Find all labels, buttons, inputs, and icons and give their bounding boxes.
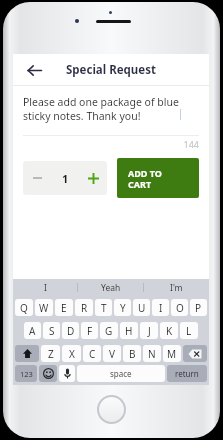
- button[interactable]: U: [133, 299, 150, 316]
- staticText: Q: [20, 301, 28, 315]
- button[interactable]: Increase quantity: [79, 161, 107, 195]
- button[interactable]: R: [75, 299, 93, 316]
- button[interactable]: Decrease quantity: [23, 161, 51, 195]
- button[interactable]: Emoji: [39, 365, 57, 382]
- staticText: Z: [48, 347, 54, 361]
- staticText: Special Request: [66, 62, 156, 78]
- button[interactable]: Y: [114, 299, 131, 316]
- button[interactable]: Z: [41, 345, 60, 362]
- staticText: K: [166, 324, 173, 338]
- button[interactable]: H: [120, 322, 138, 339]
- staticText: I'm: [170, 282, 183, 294]
- button[interactable]: Backspace: [183, 345, 207, 362]
- staticText: B: [129, 347, 136, 361]
- staticText: W: [39, 301, 49, 315]
- button[interactable]: X: [62, 345, 81, 362]
- button[interactable]: space: [77, 365, 165, 382]
- staticText: N: [148, 347, 156, 361]
- staticText: U: [138, 301, 146, 315]
- button[interactable]: I'm: [144, 279, 209, 296]
- staticText: V: [109, 347, 115, 361]
- button[interactable]: M: [163, 345, 181, 362]
- staticText: F: [87, 324, 93, 338]
- button[interactable]: I: [152, 299, 169, 316]
- button[interactable]: O: [171, 299, 188, 316]
- staticText: J: [148, 324, 151, 338]
- staticText: I: [44, 282, 47, 294]
- button[interactable]: I: [13, 279, 77, 296]
- button[interactable]: C: [83, 345, 101, 362]
- staticText: Y: [120, 301, 126, 315]
- button[interactable]: G: [100, 322, 118, 339]
- staticText: 144: [23, 138, 199, 150]
- button[interactable]: K: [160, 322, 178, 339]
- staticText: T: [101, 301, 107, 315]
- staticText: 123: [20, 369, 33, 379]
- button[interactable]: Shift: [15, 345, 39, 362]
- button[interactable]: J: [140, 322, 158, 339]
- button[interactable]: return: [167, 365, 207, 382]
- staticText: return: [175, 368, 199, 379]
- staticText: ADD TO CART: [128, 167, 162, 190]
- staticText: O: [176, 301, 184, 315]
- button[interactable]: Numbers: [15, 365, 37, 382]
- staticText: D: [67, 324, 75, 338]
- button[interactable]: Q: [15, 299, 33, 316]
- staticText: G: [105, 324, 113, 338]
- button[interactable]: E: [55, 299, 73, 316]
- staticText: Please add one package of blue sticky no…: [23, 95, 179, 123]
- staticText: S: [49, 324, 55, 338]
- button[interactable]: N: [143, 345, 161, 362]
- button[interactable]: D: [62, 322, 79, 339]
- button[interactable]: W: [35, 299, 53, 316]
- button[interactable]: L: [180, 322, 198, 339]
- staticText: C: [89, 347, 96, 361]
- button[interactable]: S: [43, 322, 60, 339]
- staticText: 1: [62, 171, 69, 186]
- staticText: X: [69, 347, 75, 361]
- button[interactable]: Dictation: [59, 365, 75, 382]
- button[interactable]: ADD TO CART: [117, 158, 199, 198]
- staticText: E: [61, 301, 67, 315]
- button[interactable]: Back: [23, 59, 45, 81]
- button[interactable]: F: [81, 322, 98, 339]
- staticText: L: [186, 324, 192, 338]
- staticText: A: [29, 324, 36, 338]
- staticText: Yeah: [101, 282, 121, 294]
- staticText: M: [167, 347, 177, 361]
- staticText: P: [195, 301, 202, 315]
- button[interactable]: Yeah: [78, 279, 143, 296]
- button[interactable]: V: [103, 345, 121, 362]
- staticText: H: [125, 324, 133, 338]
- button[interactable]: B: [123, 345, 141, 362]
- button[interactable]: A: [24, 322, 41, 339]
- button[interactable]: P: [190, 299, 207, 316]
- staticText: R: [81, 301, 88, 315]
- staticText: space: [110, 368, 132, 379]
- button[interactable]: T: [95, 299, 112, 316]
- staticText: I: [159, 301, 163, 315]
